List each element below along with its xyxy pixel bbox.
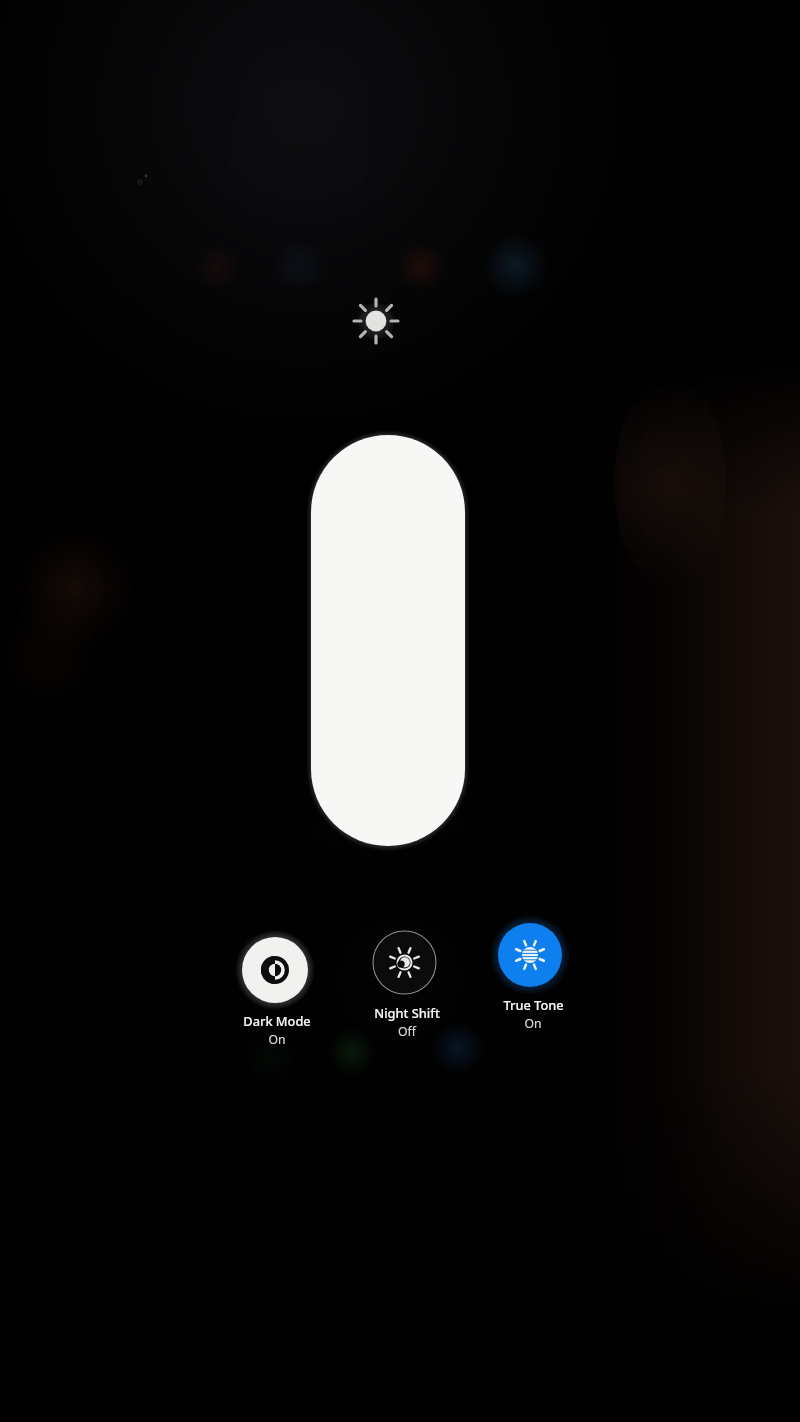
staticText: On [524,1015,542,1032]
button[interactable]: Brightness slider [311,435,465,846]
button[interactable]: Night Shift Off [351,930,463,1046]
button[interactable]: Brightness [348,293,404,349]
staticText: Night Shift [374,1004,440,1021]
staticText: Off [398,1023,416,1040]
staticText: True Tone [503,996,564,1013]
staticText: On [268,1031,286,1048]
button[interactable]: True Tone On [477,923,589,1038]
staticText: Dark Mode [243,1012,311,1029]
button[interactable]: Dark Mode On [221,937,333,1054]
